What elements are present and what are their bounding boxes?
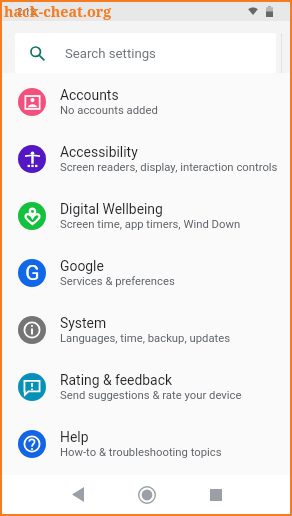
button[interactable]: Accessibility	[2, 130, 290, 187]
button[interactable]: Search settings	[15, 33, 276, 73]
button[interactable]: System	[2, 301, 290, 358]
staticText: Accounts	[60, 87, 119, 103]
staticText: Rating & feedback	[60, 372, 172, 388]
staticText: Accessibility	[60, 144, 138, 160]
staticText: Screen readers, display, interaction con…	[60, 161, 278, 174]
button[interactable]: Accounts	[2, 73, 290, 130]
staticText: Languages, time, backup, updates	[60, 332, 231, 345]
staticText: Search settings	[65, 46, 156, 61]
staticText: Services & preferences	[60, 275, 175, 288]
staticText: 2:12	[17, 6, 36, 17]
staticText: Digital Wellbeing	[60, 201, 163, 217]
button[interactable]: Back	[43, 475, 112, 514]
staticText: System	[60, 315, 107, 331]
staticText: Screen time, app timers, Wind Down	[60, 218, 241, 231]
staticText: G	[25, 261, 40, 286]
staticText: Send suggestions & rate your device	[60, 389, 242, 402]
button[interactable]: Help	[2, 415, 290, 472]
button[interactable]: Digital Wellbeing	[2, 187, 290, 244]
button[interactable]: Rating & feedback	[2, 358, 290, 415]
staticText: How-to & troubleshooting topics	[60, 446, 222, 459]
staticText: Help	[60, 429, 89, 445]
button[interactable]: G	[2, 244, 290, 301]
button[interactable]: Home	[112, 475, 181, 514]
staticText: No accounts added	[60, 104, 158, 117]
staticText: Google	[60, 258, 104, 274]
button[interactable]: Recent apps	[181, 475, 250, 514]
staticText: hack-cheat.org	[4, 2, 112, 21]
